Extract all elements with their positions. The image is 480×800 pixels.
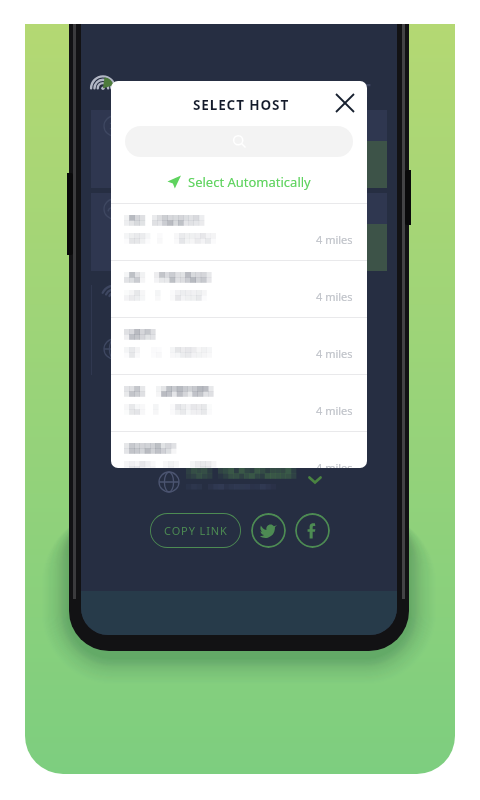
button[interactable]: Close [329,87,361,119]
button[interactable] [91,193,387,271]
button[interactable] [91,110,387,188]
button[interactable]: 4 miles [111,261,367,317]
staticText: 4 miles [316,232,353,247]
staticText: SELECT HOST [115,96,367,114]
staticText: 4 miles [316,346,353,361]
button[interactable]: Select Automatically [111,171,367,193]
staticText: Select Automatically [188,173,311,191]
button[interactable]: COPY LINK [150,513,241,548]
staticText: COPY LINK [164,523,228,538]
button[interactable]: Share on Facebook [295,513,330,548]
button[interactable]: 4 miles [111,204,367,260]
staticText: 4 miles [316,460,353,468]
staticText: 4 miles [316,289,353,304]
staticText: PODCAST [290,79,372,102]
button[interactable]: Expand [307,472,323,488]
button[interactable] [158,467,324,497]
button[interactable]: Share on Twitter [251,513,286,548]
button[interactable]: 4 miles [111,432,367,468]
staticText: 4 miles [316,403,353,418]
button[interactable]: 4 miles [111,375,367,431]
button[interactable]: 4 miles [111,318,367,374]
